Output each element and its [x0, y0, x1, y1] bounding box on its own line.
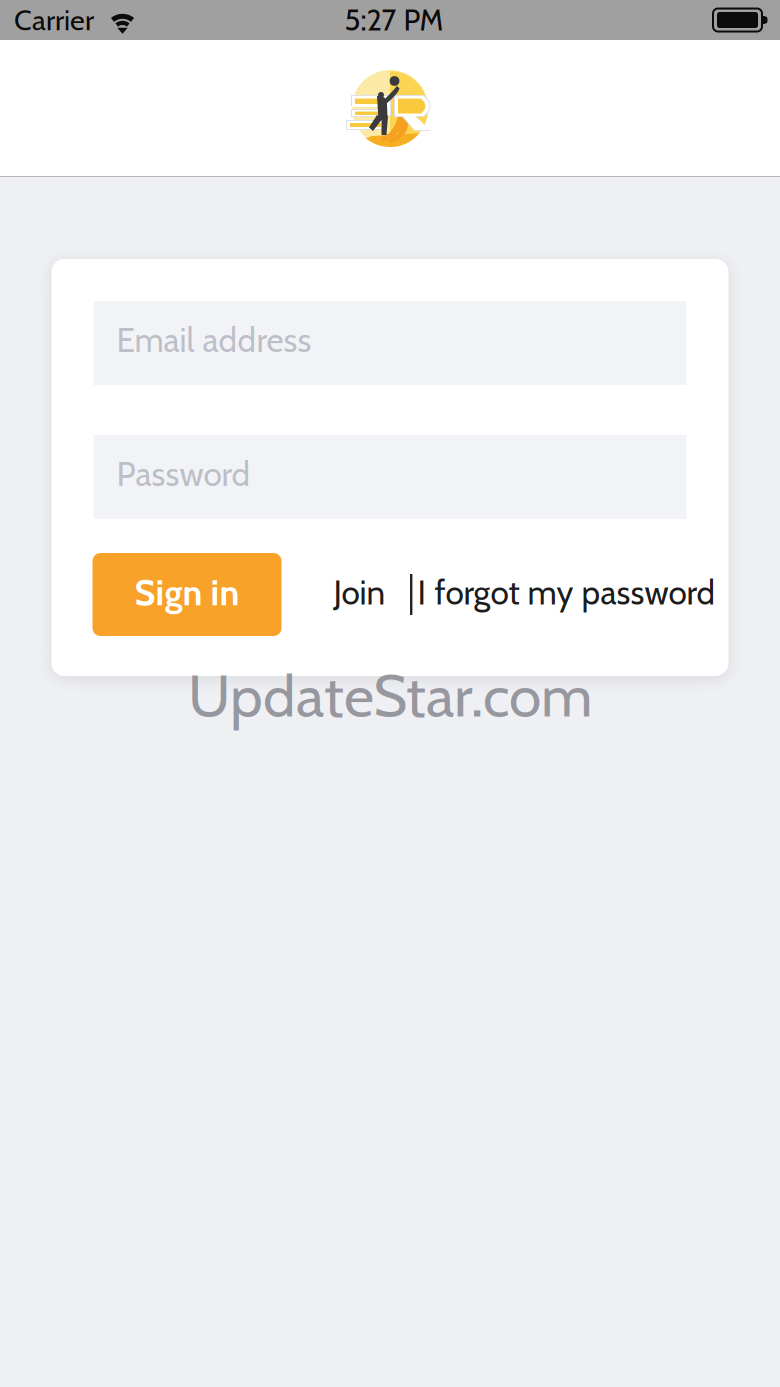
- staticText: I forgot my password: [417, 572, 715, 613]
- button[interactable]: Sign in: [92, 553, 281, 636]
- staticText: Join: [333, 572, 385, 613]
- staticText: Sign in: [134, 571, 239, 614]
- staticText: Password: [116, 454, 250, 494]
- staticText: UpdateStar.com: [188, 660, 592, 731]
- staticText: 5:27 PM: [344, 2, 443, 38]
- button[interactable]: I forgot my password: [417, 553, 729, 636]
- staticText: Carrier: [14, 3, 94, 37]
- button[interactable]: Join: [332, 553, 386, 636]
- staticText: Email address: [116, 320, 311, 360]
